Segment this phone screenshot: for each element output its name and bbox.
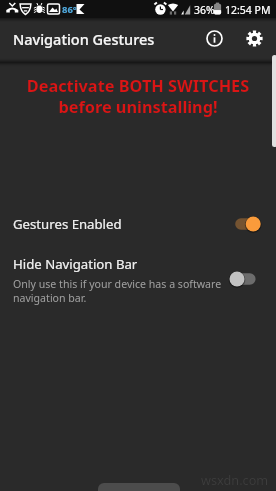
staticText: 86° bbox=[62, 3, 77, 16]
button[interactable]: Info bbox=[197, 21, 232, 56]
staticText: Deactivate BOTH SWITCHES before uninstal… bbox=[0, 75, 276, 117]
button[interactable]: Hide Navigation Bar bbox=[0, 250, 276, 307]
staticText: Gestures Enabled bbox=[13, 215, 122, 233]
button[interactable]: Settings bbox=[237, 21, 272, 56]
button[interactable]: Gestures Enabled bbox=[0, 207, 276, 240]
staticText: Hide Navigation Bar bbox=[13, 255, 138, 273]
staticText: 36% bbox=[194, 3, 215, 17]
staticText: Navigation Gestures bbox=[13, 29, 155, 49]
staticText: 12:54 PM bbox=[225, 3, 271, 17]
staticText: wsxdn.com bbox=[201, 471, 269, 488]
button[interactable]: Enabled bbox=[234, 215, 261, 233]
staticText: Only use this if your device has a softw… bbox=[13, 277, 228, 305]
button[interactable]: Disabled bbox=[229, 270, 256, 288]
